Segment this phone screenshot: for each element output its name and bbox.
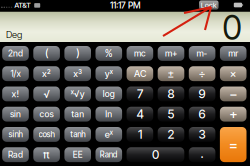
- button[interactable]: Rand: [95, 147, 122, 162]
- staticText: log: [103, 89, 115, 99]
- button[interactable]: eˣ: [95, 127, 122, 142]
- button[interactable]: 2: [158, 127, 184, 142]
- button[interactable]: −: [220, 86, 246, 101]
- button[interactable]: x!: [2, 86, 29, 101]
- staticText: 9: [199, 87, 206, 101]
- staticText: Lock: [201, 1, 217, 9]
- button[interactable]: .: [189, 147, 215, 162]
- button[interactable]: 7: [127, 86, 153, 101]
- button[interactable]: +: [220, 107, 246, 122]
- staticText: sinh: [8, 130, 22, 139]
- button[interactable]: tan: [64, 107, 91, 122]
- button[interactable]: Rad: [2, 147, 29, 162]
- staticText: 6: [199, 107, 206, 121]
- button[interactable]: m+: [158, 46, 184, 61]
- button[interactable]: yˣ: [95, 66, 122, 81]
- staticText: .: [201, 146, 204, 161]
- staticText: ×: [230, 67, 237, 80]
- staticText: cosh: [39, 130, 55, 139]
- button[interactable]: 1/x: [2, 66, 29, 81]
- button[interactable]: cosh: [33, 127, 60, 142]
- staticText: yˣ: [105, 68, 113, 79]
- staticText: −: [229, 86, 237, 102]
- button[interactable]: log: [95, 86, 122, 101]
- staticText: 7: [137, 87, 143, 101]
- staticText: 11:17 PM: [110, 0, 141, 11]
- staticText: eˣ: [105, 129, 113, 140]
- button[interactable]: ˣ√y: [64, 86, 91, 101]
- staticText: cos: [40, 109, 54, 119]
- button[interactable]: mr: [220, 46, 246, 61]
- staticText: =: [229, 136, 238, 153]
- button[interactable]: mc: [127, 46, 153, 61]
- button[interactable]: EE: [64, 147, 91, 162]
- button[interactable]: π: [33, 147, 60, 162]
- staticText: 0: [222, 7, 241, 48]
- button[interactable]: m-: [189, 46, 215, 61]
- staticText: 2: [167, 127, 174, 142]
- staticText: √: [44, 87, 50, 100]
- staticText: ˣ√y: [71, 88, 85, 100]
- staticText: 5: [167, 107, 174, 121]
- staticText: tan: [71, 109, 84, 119]
- button[interactable]: sinh: [2, 127, 29, 142]
- staticText: m+: [165, 48, 177, 59]
- staticText: x³: [73, 68, 82, 79]
- staticText: Rad: [8, 149, 23, 160]
- staticText: x²: [42, 68, 51, 79]
- button[interactable]: x²: [33, 66, 60, 81]
- staticText: +: [229, 106, 237, 122]
- button[interactable]: 4: [127, 107, 153, 122]
- button[interactable]: 5: [158, 107, 184, 122]
- staticText: mc: [134, 48, 146, 59]
- staticText: 4: [136, 107, 143, 121]
- staticText: ln: [105, 109, 112, 119]
- staticText: x!: [11, 88, 19, 100]
- button[interactable]: ): [64, 46, 91, 61]
- button[interactable]: ÷: [189, 66, 215, 81]
- button[interactable]: 2nd: [2, 46, 29, 61]
- staticText: AC: [134, 68, 146, 79]
- staticText: 8: [167, 87, 174, 101]
- staticText: AT&T: [14, 1, 31, 9]
- staticText: 0: [152, 147, 159, 162]
- button[interactable]: %: [95, 46, 122, 61]
- staticText: ): [76, 47, 79, 60]
- button[interactable]: 8: [158, 86, 184, 101]
- button[interactable]: =: [220, 127, 246, 162]
- staticText: sin: [10, 109, 21, 119]
- staticText: ±: [167, 67, 174, 80]
- staticText: 3: [199, 127, 206, 142]
- button[interactable]: 3: [189, 127, 215, 142]
- button[interactable]: 1: [127, 127, 153, 142]
- staticText: m-: [197, 48, 208, 59]
- staticText: Deg: [6, 29, 22, 40]
- button[interactable]: 6: [189, 107, 215, 122]
- staticText: 2nd: [8, 48, 23, 59]
- staticText: Rand: [100, 150, 118, 159]
- button[interactable]: tanh: [64, 127, 91, 142]
- button[interactable]: AC: [127, 66, 153, 81]
- staticText: 1: [138, 127, 142, 142]
- staticText: %: [105, 47, 113, 59]
- button[interactable]: ×: [220, 66, 246, 81]
- staticText: (: [45, 47, 48, 60]
- button[interactable]: x³: [64, 66, 91, 81]
- button[interactable]: 9: [189, 86, 215, 101]
- staticText: ÷: [199, 67, 206, 80]
- button[interactable]: √: [33, 86, 60, 101]
- button[interactable]: ±: [158, 66, 184, 81]
- button[interactable]: (: [33, 46, 60, 61]
- staticText: π: [43, 148, 50, 161]
- button[interactable]: 0: [127, 147, 184, 162]
- staticText: tanh: [70, 130, 85, 139]
- button[interactable]: ln: [95, 107, 122, 122]
- button[interactable]: cos: [33, 107, 60, 122]
- staticText: 1/x: [10, 68, 20, 79]
- staticText: EE: [73, 149, 83, 160]
- button[interactable]: Lock: [199, 0, 219, 10]
- button[interactable]: sin: [2, 107, 29, 122]
- staticText: mr: [228, 48, 238, 59]
